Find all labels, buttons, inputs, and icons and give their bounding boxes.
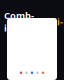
staticText: Combine — [4, 9, 34, 34]
staticText: playlist — [34, 3, 63, 40]
